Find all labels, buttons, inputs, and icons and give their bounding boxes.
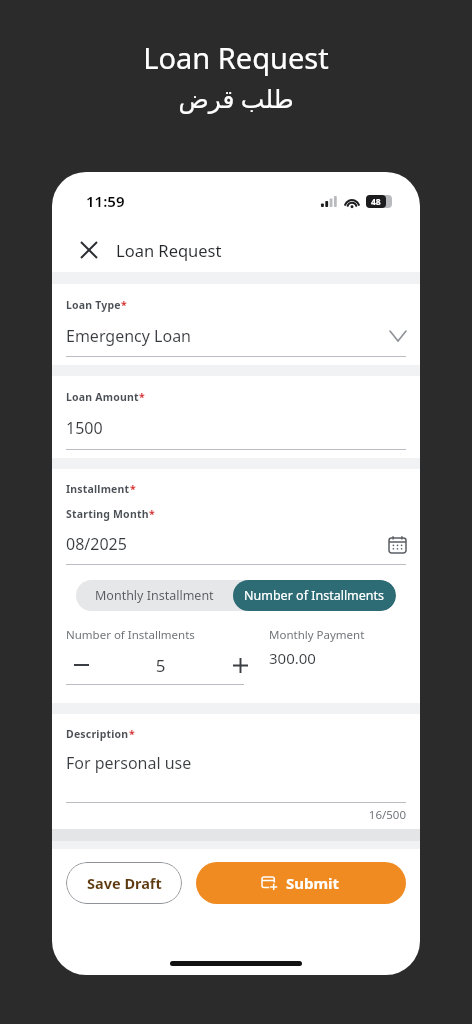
staticText: * [130, 482, 136, 496]
button[interactable]: Emergency Loan [66, 325, 406, 347]
button[interactable]: Number of Installments [233, 580, 396, 611]
button[interactable]: Save Draft [66, 862, 182, 904]
button[interactable]: Close [74, 235, 104, 265]
button[interactable]: Increase [225, 650, 255, 680]
button[interactable]: 08/2025 [66, 533, 406, 555]
staticText: * [149, 507, 155, 521]
staticText: Save Draft [87, 873, 162, 893]
staticText: طلب قرض [178, 81, 294, 115]
staticText: * [129, 727, 135, 741]
staticText: 5 [96, 654, 225, 677]
staticText: 16/500 [66, 807, 406, 823]
staticText: Emergency Loan [66, 325, 390, 347]
staticText: 48 [371, 196, 381, 208]
staticText: 11:59 [86, 191, 125, 211]
staticText: Installment [66, 482, 130, 496]
staticText: Submit [286, 873, 340, 893]
button[interactable]: Submit [196, 862, 406, 904]
staticText: Starting Month [66, 507, 149, 521]
button[interactable]: Monthly Installment [76, 580, 233, 611]
staticText: 300.00 [269, 648, 316, 668]
staticText: Number of Installments [66, 627, 195, 643]
button[interactable]: 1500 [66, 417, 103, 439]
staticText: Description [66, 727, 129, 741]
staticText: 08/2025 [66, 533, 389, 555]
staticText: * [139, 390, 145, 404]
staticText: Loan Type [66, 298, 121, 312]
button[interactable]: For personal use [66, 752, 192, 774]
staticText: Loan Amount [66, 390, 139, 404]
staticText: Loan Request [116, 239, 222, 261]
staticText: * [121, 298, 127, 312]
staticText: Monthly Installment [95, 587, 214, 604]
button[interactable]: Decrease [66, 650, 96, 680]
staticText: Monthly Payment [269, 627, 365, 643]
staticText: Number of Installments [244, 587, 385, 604]
staticText: Loan Request [143, 38, 329, 77]
